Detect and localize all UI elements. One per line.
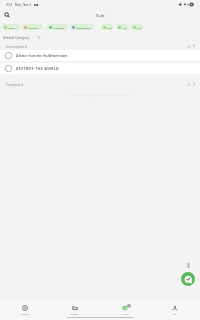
staticText: 2: [128, 305, 130, 308]
button[interactable]: Linking Test: [70, 24, 94, 30]
staticText: 31 R: [107, 26, 112, 29]
staticText: Uncompleted: [6, 44, 27, 48]
staticText: 2: [188, 44, 190, 48]
button[interactable]: In 3 Days: [47, 24, 68, 30]
staticText: 9:12: [6, 3, 12, 7]
staticText: A letter from the YouWriter team: [16, 54, 68, 58]
staticText: Today: [8, 26, 15, 29]
button[interactable]: Search: [2, 10, 12, 20]
button[interactable]: DESTROY THE WORLD: [0, 63, 200, 74]
button[interactable]: 31 R: [131, 24, 143, 30]
staticText: DESTROY THE WORLD: [16, 67, 60, 71]
staticText: Folder: [71, 312, 79, 315]
button[interactable]: 31 R: [101, 24, 113, 30]
button[interactable]: Add task: [181, 272, 195, 286]
button[interactable]: A letter from the YouWriter team: [0, 50, 200, 61]
staticText: Completed: [6, 82, 23, 86]
button[interactable]: Delayed: [22, 24, 43, 30]
staticText: Linking Test: [76, 26, 90, 29]
staticText: Delayed: [28, 26, 38, 29]
button[interactable]: 2: [100, 305, 150, 320]
staticText: To-do: [96, 14, 105, 18]
button[interactable]: Me: [150, 305, 200, 320]
staticText: Mon, Nov 3: [15, 3, 32, 7]
staticText: In 3 Days: [53, 26, 64, 29]
button[interactable]: Folder: [50, 305, 100, 320]
staticText: 31 R: [122, 26, 127, 29]
button[interactable]: 31 R: [116, 24, 129, 30]
button[interactable]: Today: [2, 24, 20, 30]
staticText: To-do: [122, 312, 129, 315]
staticText: Default Category: [3, 35, 30, 39]
button[interactable]: Record: [0, 305, 50, 320]
staticText: Me: [173, 312, 177, 315]
staticText: 31 R: [137, 26, 142, 29]
button[interactable]: Default Category: [3, 32, 200, 41]
staticText: Record: [21, 312, 30, 315]
staticText: 0: [188, 82, 190, 86]
button[interactable]: Voice input: [183, 260, 193, 270]
